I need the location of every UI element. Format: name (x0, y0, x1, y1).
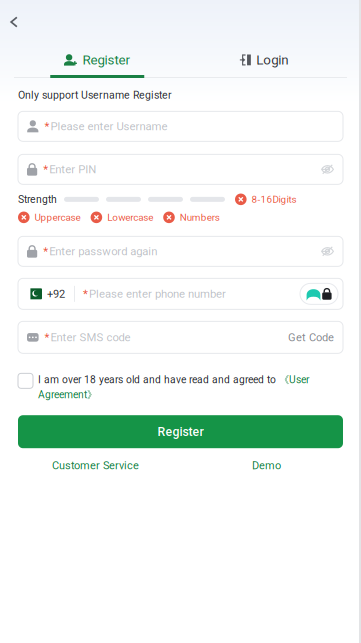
staticText: Agreement》 (38, 388, 97, 401)
button[interactable]: Agree to User Agreement (18, 373, 33, 388)
staticText: Get Code (288, 331, 334, 344)
staticText: * (83, 287, 88, 300)
button[interactable]: +92 (18, 278, 74, 309)
staticText: 《User (279, 373, 309, 386)
staticText: Please enter phone number (89, 287, 226, 300)
staticText: Login (256, 52, 288, 68)
button[interactable]: Login (180, 50, 347, 78)
staticText: * (43, 163, 48, 176)
staticText: Enter password again (49, 245, 157, 258)
staticText: 8-16Digits (252, 194, 297, 205)
staticText: * (45, 331, 50, 344)
button[interactable]: Demo (252, 459, 281, 472)
button[interactable]: Back (0, 0, 26, 34)
button[interactable]: Register (18, 415, 343, 448)
staticText: Uppercase (35, 212, 81, 223)
staticText: Enter PIN (49, 163, 96, 176)
staticText: +92 (47, 287, 65, 300)
staticText: Lowercase (107, 212, 153, 223)
staticText: Please enter Username (51, 120, 168, 133)
staticText: * (45, 120, 50, 133)
staticText: Strength (18, 193, 57, 205)
staticText: Enter SMS code (51, 331, 131, 344)
staticText: Numbers (180, 212, 220, 223)
staticText: Only support Username Register (18, 89, 172, 101)
staticText: Demo (252, 459, 281, 472)
staticText: I am over 18 years old and have read and… (38, 374, 279, 386)
staticText: Register (157, 424, 203, 439)
button[interactable]: Get Code (288, 331, 334, 344)
staticText: Customer Service (52, 459, 139, 472)
button[interactable]: Customer Service (52, 459, 139, 472)
staticText: * (43, 245, 48, 258)
button[interactable]: Register (14, 50, 180, 78)
staticText: Register (82, 52, 130, 68)
